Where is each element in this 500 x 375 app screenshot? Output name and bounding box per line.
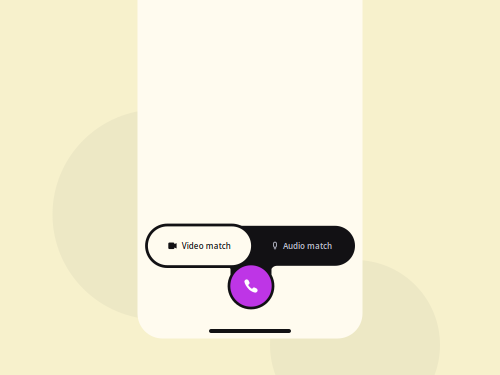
button[interactable]: Video match — [146, 225, 252, 267]
button[interactable]: Audio match — [250, 226, 354, 266]
button[interactable]: Call — [228, 263, 274, 309]
staticText: Video match — [182, 240, 231, 251]
staticText: Audio match — [283, 240, 332, 251]
